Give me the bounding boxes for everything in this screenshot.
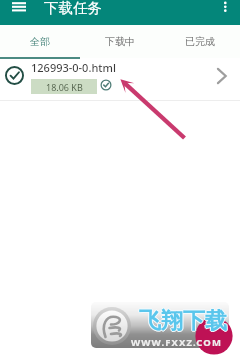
button[interactable]: Open details — [212, 66, 232, 86]
button[interactable]: 已完成 — [160, 25, 240, 58]
button[interactable]: 126993-0-0.html — [0, 58, 240, 101]
staticText: 飞翔下载 — [139, 306, 227, 334]
staticText: 下载任务 — [44, 0, 102, 17]
button[interactable]: More options — [218, 0, 234, 14]
staticText: 飞翔下载 — [138, 307, 226, 335]
staticText: 飞翔下载 — [139, 307, 227, 335]
staticText: 126993-0-0.html — [31, 60, 116, 75]
button[interactable]: 全部 — [0, 25, 80, 58]
staticText: 已完成 — [185, 35, 215, 48]
staticText: WWW.FXXZ.COM — [131, 336, 222, 349]
button[interactable]: Menu — [8, 0, 30, 13]
staticText: 飞翔下载 — [140, 307, 228, 335]
staticText: 飞翔下载 — [139, 308, 227, 336]
button[interactable]: 下载中 — [80, 25, 160, 58]
staticText: 全部 — [30, 35, 50, 48]
staticText: 下载中 — [105, 35, 135, 48]
staticText: 18.06 KB — [46, 81, 83, 93]
